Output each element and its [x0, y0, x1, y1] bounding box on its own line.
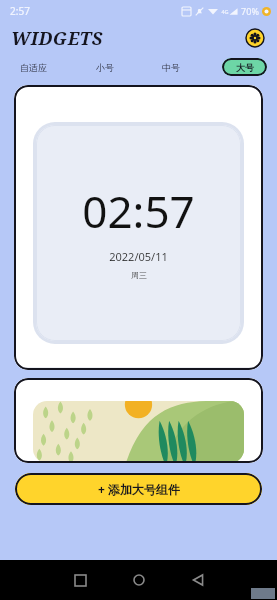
button[interactable]: 大号 — [222, 58, 267, 76]
staticText: 70% — [241, 5, 259, 17]
button[interactable]: 中号 — [156, 59, 186, 76]
button[interactable]: Settings — [246, 29, 264, 47]
button[interactable]: 自适应 — [14, 59, 53, 76]
staticText: 周三 — [131, 270, 147, 280]
staticText: 小号 — [96, 62, 114, 73]
staticText: WIDGETS — [11, 26, 103, 51]
staticText: 2:57 — [10, 4, 30, 18]
button[interactable] — [14, 378, 263, 463]
button[interactable]: 小号 — [90, 59, 120, 76]
staticText: + 添加大号组件 — [98, 481, 180, 497]
staticText: 自适应 — [20, 62, 47, 73]
button[interactable]: 02:57 — [14, 85, 263, 370]
staticText: 2022/05/11 — [109, 249, 168, 264]
staticText: 大号 — [236, 62, 254, 73]
button[interactable]: Home — [122, 563, 156, 597]
button[interactable]: + 添加大号组件 — [15, 473, 262, 505]
staticText: 中号 — [162, 62, 180, 73]
button[interactable]: Back — [181, 563, 215, 597]
button[interactable]: Recents — [63, 563, 97, 597]
staticText: 02:57 — [82, 181, 195, 241]
staticText: 4G — [221, 8, 229, 15]
